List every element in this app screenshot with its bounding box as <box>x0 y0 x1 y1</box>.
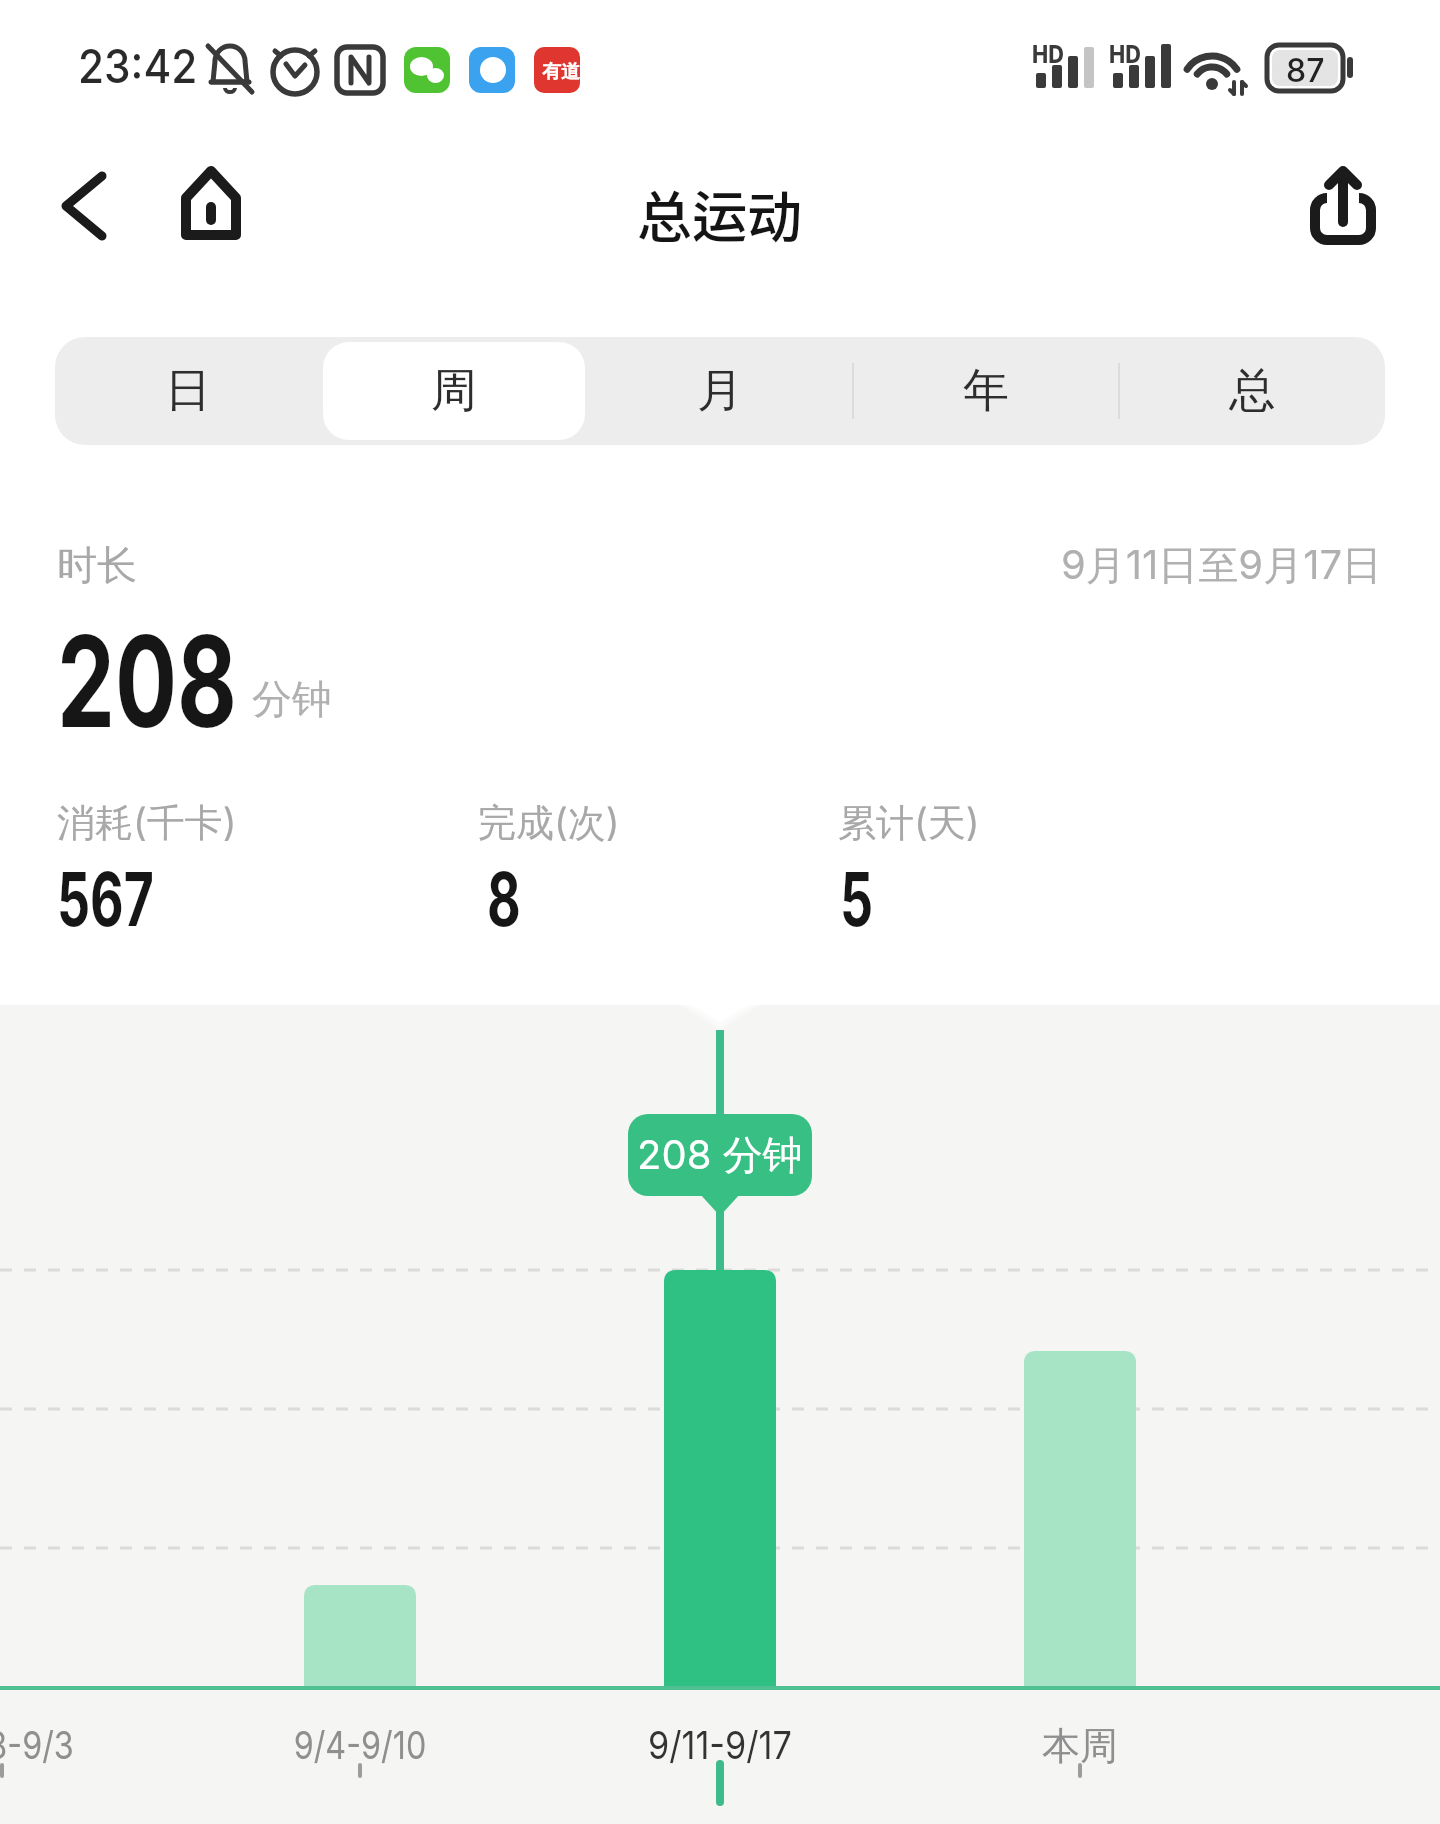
staticText: 总运动 <box>637 173 803 253</box>
staticText: HD <box>1032 40 1064 69</box>
staticText: 5 <box>840 854 874 944</box>
staticText: HD <box>1109 40 1141 69</box>
staticText: 周 <box>431 362 477 420</box>
staticText: 时长 <box>57 540 137 590</box>
staticText: 月 <box>697 362 743 420</box>
staticText: 有道 <box>542 60 580 84</box>
button[interactable]: 日 <box>57 342 319 440</box>
button[interactable] <box>1295 158 1385 253</box>
staticText: 87 <box>1286 51 1325 90</box>
staticText: 8/28-9/3 <box>0 1722 75 1768</box>
staticText: 567 <box>57 854 154 944</box>
staticText: 消耗(千卡) <box>57 799 237 847</box>
button[interactable] <box>48 160 128 250</box>
staticText: 9月11日至9月17日 <box>1061 540 1383 591</box>
button[interactable]: 总 <box>1121 342 1383 440</box>
staticText: 日 <box>165 362 211 420</box>
staticText: 8 <box>487 854 521 944</box>
staticText: 208 <box>57 605 237 757</box>
staticText: 9/4-9/10 <box>294 1722 426 1768</box>
staticText: 208 分钟 <box>637 1130 803 1181</box>
button[interactable]: 年 <box>855 342 1117 440</box>
button[interactable] <box>175 162 247 246</box>
staticText: 本周 <box>1042 1722 1118 1770</box>
button[interactable]: 月 <box>589 342 851 440</box>
staticText: 累计(天) <box>838 799 980 847</box>
staticText: 23:42 <box>78 38 198 94</box>
staticText: 9/11-9/17 <box>648 1722 792 1768</box>
staticText: 年 <box>963 362 1009 420</box>
staticText: 完成(次) <box>478 799 620 847</box>
staticText: 分钟 <box>252 674 332 724</box>
staticText: 总 <box>1229 362 1275 420</box>
button[interactable]: 周 <box>323 342 585 440</box>
